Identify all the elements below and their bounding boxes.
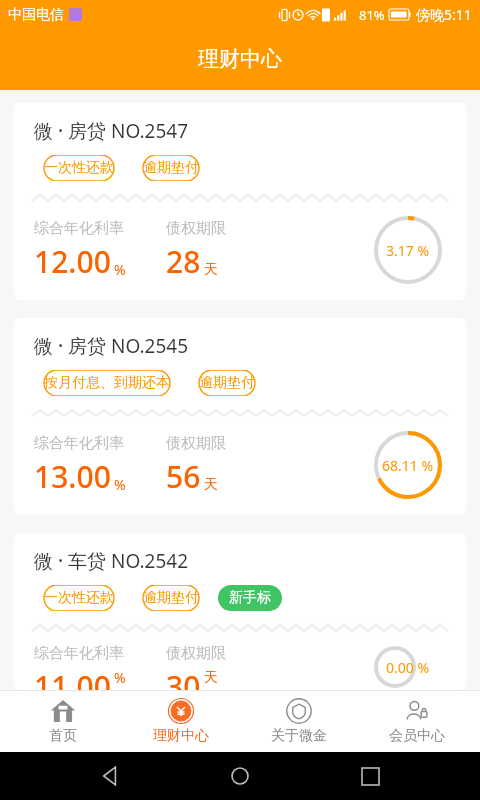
- staticText: 天: [204, 669, 218, 687]
- button[interactable]: 理财中心: [126, 690, 236, 752]
- staticText: 微 · 车贷: [34, 548, 111, 574]
- staticText: 逾期垫付: [143, 159, 199, 177]
- staticText: 28: [166, 241, 201, 282]
- staticText: 综合年化利率: [34, 644, 124, 663]
- staticText: NO.2542: [111, 548, 189, 574]
- staticText: 12.00: [34, 241, 111, 282]
- staticText: 0.00 %: [386, 658, 430, 677]
- staticText: 中国电信: [8, 6, 64, 24]
- button[interactable]: 关于微金: [244, 690, 354, 752]
- staticText: 债权期限: [166, 219, 226, 238]
- staticText: 3.17 %: [386, 241, 430, 260]
- button[interactable]: 逾期垫付: [133, 585, 209, 611]
- staticText: 首页: [49, 727, 77, 745]
- button[interactable]: 一次性还款: [34, 585, 124, 611]
- staticText: 关于微金: [271, 727, 327, 745]
- staticText: 30: [166, 666, 201, 690]
- staticText: 傍晚5:11: [416, 5, 472, 24]
- staticText: 债权期限: [166, 434, 226, 453]
- button[interactable]: 首页: [8, 690, 118, 752]
- staticText: NO.2547: [111, 118, 189, 144]
- staticText: 天: [204, 261, 218, 279]
- staticText: 综合年化利率: [34, 434, 124, 453]
- button[interactable]: 会员中心: [362, 690, 472, 752]
- button[interactable]: 微 · 房贷: [14, 318, 466, 515]
- button[interactable]: Home: [220, 756, 260, 796]
- staticText: 微 · 房贷: [34, 333, 111, 359]
- staticText: 一次性还款: [44, 589, 114, 607]
- staticText: %: [114, 668, 126, 687]
- staticText: 天: [204, 476, 218, 494]
- staticText: 68.11 %: [382, 456, 434, 475]
- staticText: 债权期限: [166, 644, 226, 663]
- staticText: 81%: [359, 6, 385, 24]
- button[interactable]: Back: [90, 756, 130, 796]
- staticText: 逾期垫付: [143, 589, 199, 607]
- staticText: 13.00: [34, 456, 111, 497]
- staticText: %: [114, 260, 126, 279]
- button[interactable]: 一次性还款: [34, 155, 124, 181]
- button[interactable]: 微 · 车贷: [14, 533, 466, 690]
- staticText: 56: [166, 456, 201, 497]
- button[interactable]: 逾期垫付: [133, 155, 209, 181]
- staticText: 新手标: [229, 589, 271, 607]
- button[interactable]: 逾期垫付: [189, 370, 265, 396]
- staticText: 理财中心: [153, 727, 209, 745]
- staticText: 按月付息、到期还本: [44, 374, 170, 392]
- staticText: 逾期垫付: [199, 374, 255, 392]
- button[interactable]: 微 · 房贷: [14, 103, 466, 300]
- button[interactable]: 新手标: [218, 585, 282, 611]
- staticText: 11.00: [34, 666, 111, 690]
- staticText: 综合年化利率: [34, 219, 124, 238]
- staticText: 微 · 房贷: [34, 118, 111, 144]
- staticText: 一次性还款: [44, 159, 114, 177]
- staticText: %: [114, 475, 126, 494]
- staticText: 会员中心: [389, 727, 445, 745]
- button[interactable]: Recents: [350, 756, 390, 796]
- staticText: 理财中心: [198, 46, 282, 72]
- staticText: NO.2545: [111, 333, 189, 359]
- button[interactable]: 按月付息、到期还本: [34, 370, 180, 396]
